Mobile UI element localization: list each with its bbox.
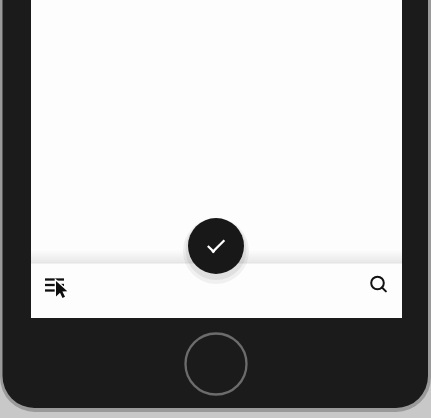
button[interactable]: Confirm xyxy=(182,212,250,284)
button[interactable]: Home xyxy=(183,331,249,397)
button[interactable]: Search xyxy=(356,265,402,313)
button[interactable]: Menu xyxy=(33,265,79,313)
